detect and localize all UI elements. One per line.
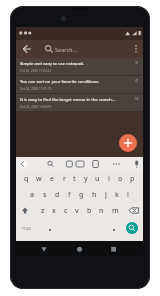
button[interactable]: w — [36, 174, 42, 183]
button[interactable]: p — [130, 174, 135, 183]
button[interactable] — [59, 241, 101, 256]
staticText: You can sort on your favorite conditions… — [20, 79, 135, 85]
button[interactable] — [126, 222, 138, 234]
button[interactable] — [16, 40, 34, 58]
button[interactable]: Simple and easy to use notepad. — [16, 58, 143, 76]
button[interactable]: m — [112, 206, 119, 215]
staticText: Oct 24, 2020 11:02:23 — [20, 69, 52, 73]
button[interactable]: Search... — [16, 40, 143, 58]
staticText: Simple and easy to use notepad. — [20, 61, 135, 67]
button[interactable]: d — [55, 190, 60, 199]
staticText: Search... — [55, 46, 78, 53]
button[interactable]: c — [64, 206, 68, 215]
button[interactable]: j — [105, 190, 107, 199]
button[interactable]: b — [87, 206, 92, 215]
button[interactable]: k — [115, 190, 119, 199]
button[interactable]: u — [95, 174, 100, 183]
staticText: Oct 24, 2020 16:09:09 — [20, 105, 52, 109]
button[interactable] — [133, 44, 143, 54]
button[interactable]: You can sort on your favorite conditions… — [16, 76, 143, 94]
staticText: It is easy to find the target memo in th… — [20, 97, 135, 103]
button[interactable]: z — [41, 206, 45, 215]
button[interactable]: t — [73, 174, 76, 183]
button[interactable]: o — [118, 174, 123, 183]
button[interactable]: s — [43, 190, 47, 199]
button[interactable]: i — [108, 174, 110, 183]
button[interactable]: It is easy to find the target memo in th… — [16, 94, 143, 112]
button[interactable] — [119, 134, 137, 152]
button[interactable]: ?123 — [22, 226, 32, 232]
button[interactable]: g — [79, 190, 84, 199]
staticText: 50 — [135, 97, 139, 101]
button[interactable]: r — [63, 174, 66, 183]
button[interactable]: q — [24, 174, 29, 183]
button[interactable]: f — [68, 190, 71, 199]
staticText: Oct 24, 2020 11:01:19 — [20, 87, 52, 91]
button[interactable]: l — [127, 190, 129, 199]
button[interactable]: h — [92, 190, 97, 199]
button[interactable]: y — [84, 174, 88, 183]
button[interactable] — [16, 157, 143, 171]
button[interactable]: e — [50, 174, 55, 183]
button[interactable] — [101, 241, 143, 256]
staticText: 31 — [135, 61, 139, 65]
button[interactable]: x — [52, 206, 56, 215]
staticText: 41 — [135, 79, 139, 83]
button[interactable]: v — [75, 206, 79, 215]
button[interactable] — [16, 241, 59, 256]
button[interactable]: a — [30, 190, 35, 199]
button[interactable]: n — [99, 206, 104, 215]
